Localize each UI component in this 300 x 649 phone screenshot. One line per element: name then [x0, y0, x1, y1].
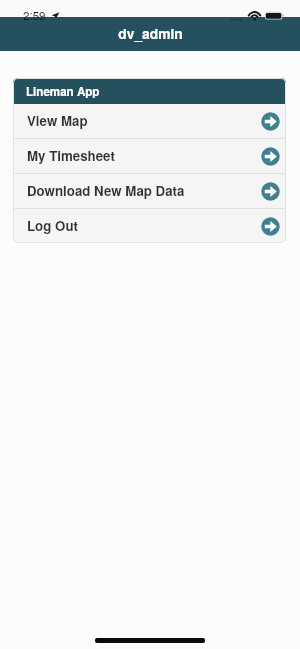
staticText: Lineman App [26, 83, 100, 100]
button[interactable]: Download New Map Data [13, 174, 286, 208]
button[interactable]: View Map [13, 104, 286, 138]
other: Open [261, 112, 280, 131]
staticText: My Timesheet [27, 146, 115, 165]
button[interactable]: Log Out [13, 209, 286, 243]
staticText: dv_admin [118, 23, 183, 43]
staticText: 2:59 [23, 7, 46, 24]
other: Open [261, 147, 280, 166]
staticText: Log Out [27, 216, 78, 235]
button[interactable]: My Timesheet [13, 139, 286, 173]
staticText: Download New Map Data [27, 181, 185, 200]
staticText: View Map [27, 111, 88, 130]
other: Open [261, 217, 280, 236]
other: Open [261, 182, 280, 201]
